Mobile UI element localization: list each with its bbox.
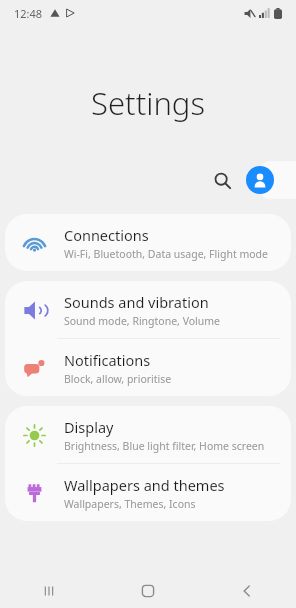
button[interactable]: Notifications	[5, 339, 291, 396]
button[interactable]: Account	[246, 166, 274, 194]
staticText: Settings	[0, 82, 296, 124]
staticText: Brightness, Blue light filter, Home scre…	[64, 439, 265, 453]
button[interactable]: Wallpapers and themes	[5, 464, 291, 521]
staticText: 12:48	[14, 6, 43, 21]
staticText: Wi-Fi, Bluetooth, Data usage, Flight mod…	[64, 247, 269, 261]
button[interactable]: Connections	[5, 214, 291, 271]
button[interactable]: Recents	[25, 574, 73, 608]
staticText: Sounds and vibration	[64, 292, 209, 312]
staticText: Notifications	[64, 350, 151, 370]
staticText: Wallpapers and themes	[64, 475, 225, 495]
button[interactable]: Display	[5, 406, 291, 463]
button[interactable]: Back	[223, 574, 271, 608]
staticText: Sound mode, Ringtone, Volume	[64, 314, 221, 328]
staticText: Connections	[64, 225, 149, 245]
staticText: Display	[64, 417, 114, 437]
button[interactable]: Sounds and vibration	[5, 281, 291, 338]
staticText: Block, allow, prioritise	[64, 372, 172, 386]
button[interactable]: Search	[204, 162, 240, 198]
button[interactable]: Home	[124, 574, 172, 608]
staticText: Wallpapers, Themes, Icons	[64, 497, 196, 511]
